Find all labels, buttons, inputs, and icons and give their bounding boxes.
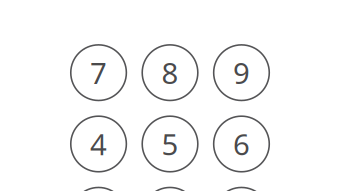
button[interactable]: 6 — [214, 116, 269, 172]
button[interactable]: 2 — [142, 187, 198, 191]
staticText: 7 — [90, 53, 107, 92]
staticText: 8 — [161, 53, 178, 92]
button[interactable]: 5 — [142, 116, 198, 172]
staticText: 9 — [233, 53, 250, 92]
button[interactable]: 1 — [71, 187, 126, 191]
button[interactable]: 8 — [142, 45, 198, 100]
button[interactable]: 4 — [71, 116, 126, 172]
button[interactable]: 9 — [214, 45, 269, 100]
staticText: 6 — [233, 124, 250, 163]
staticText: 4 — [90, 124, 107, 163]
staticText: 5 — [161, 124, 178, 163]
button[interactable]: 7 — [71, 45, 126, 100]
button[interactable]: 3 — [214, 187, 269, 191]
